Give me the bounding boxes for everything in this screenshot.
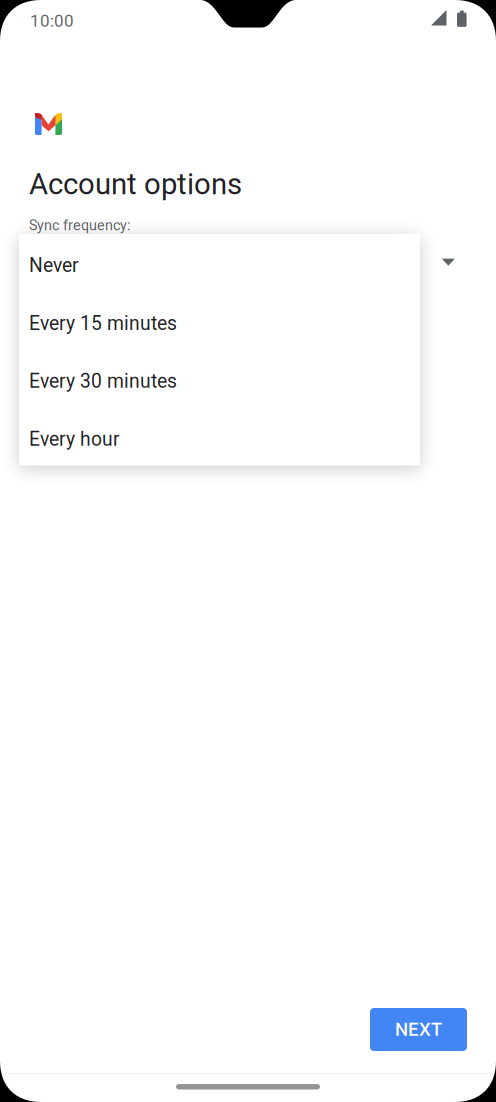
staticText: Sync frequency: — [29, 217, 130, 234]
staticText: Every hour — [29, 428, 120, 450]
staticText: Every 15 minutes — [29, 312, 177, 335]
staticText: Every 30 minutes — [29, 370, 177, 392]
staticText: Account options — [29, 167, 242, 201]
button[interactable]: NEXT — [370, 1008, 467, 1051]
staticText: Never — [29, 254, 79, 277]
button[interactable]: Every 30 minutes — [19, 350, 420, 408]
button[interactable]: Never — [19, 234, 420, 292]
staticText: NEXT — [395, 1019, 442, 1040]
button[interactable]: Every 15 minutes — [19, 292, 420, 350]
button[interactable]: Sync frequency — [432, 244, 464, 280]
button[interactable]: Every hour — [19, 408, 420, 466]
staticText: 10:00 — [30, 11, 74, 31]
